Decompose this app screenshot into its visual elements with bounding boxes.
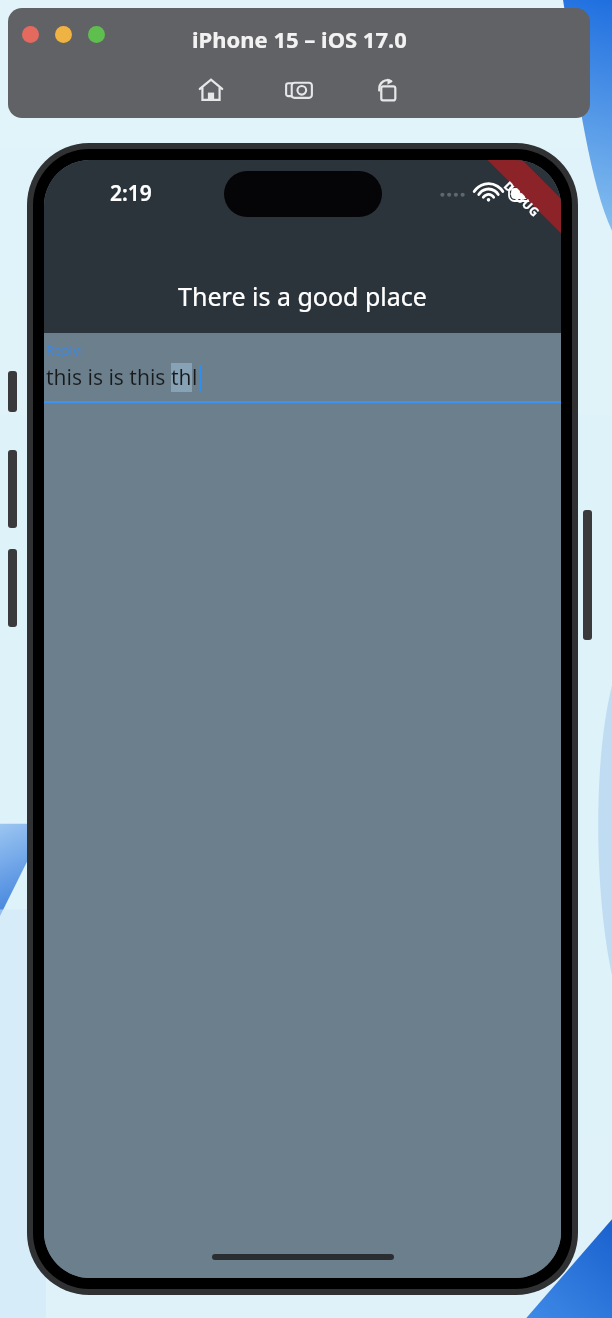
- button[interactable]: Home: [189, 68, 233, 112]
- button[interactable]: Silent switch: [8, 371, 17, 412]
- button[interactable]: [22, 26, 39, 43]
- button[interactable]: Volume up: [8, 450, 17, 528]
- staticText: 2:19: [110, 179, 152, 208]
- staticText: th: [171, 363, 192, 392]
- staticText: Reply:: [46, 341, 83, 359]
- staticText: There is a good place: [178, 279, 427, 313]
- button[interactable]: [88, 26, 105, 43]
- staticText: iPhone 15 – iOS 17.0: [192, 24, 407, 54]
- button[interactable]: Reply:: [44, 333, 561, 403]
- button[interactable]: [55, 26, 72, 43]
- button[interactable]: Power: [583, 510, 592, 640]
- button[interactable]: Screenshot: [277, 68, 321, 112]
- button[interactable]: Volume down: [8, 549, 17, 627]
- staticText: DEBUG: [501, 177, 544, 220]
- staticText: l: [192, 363, 198, 392]
- button[interactable]: Rotate: [365, 68, 409, 112]
- staticText: this is is this: [46, 363, 171, 392]
